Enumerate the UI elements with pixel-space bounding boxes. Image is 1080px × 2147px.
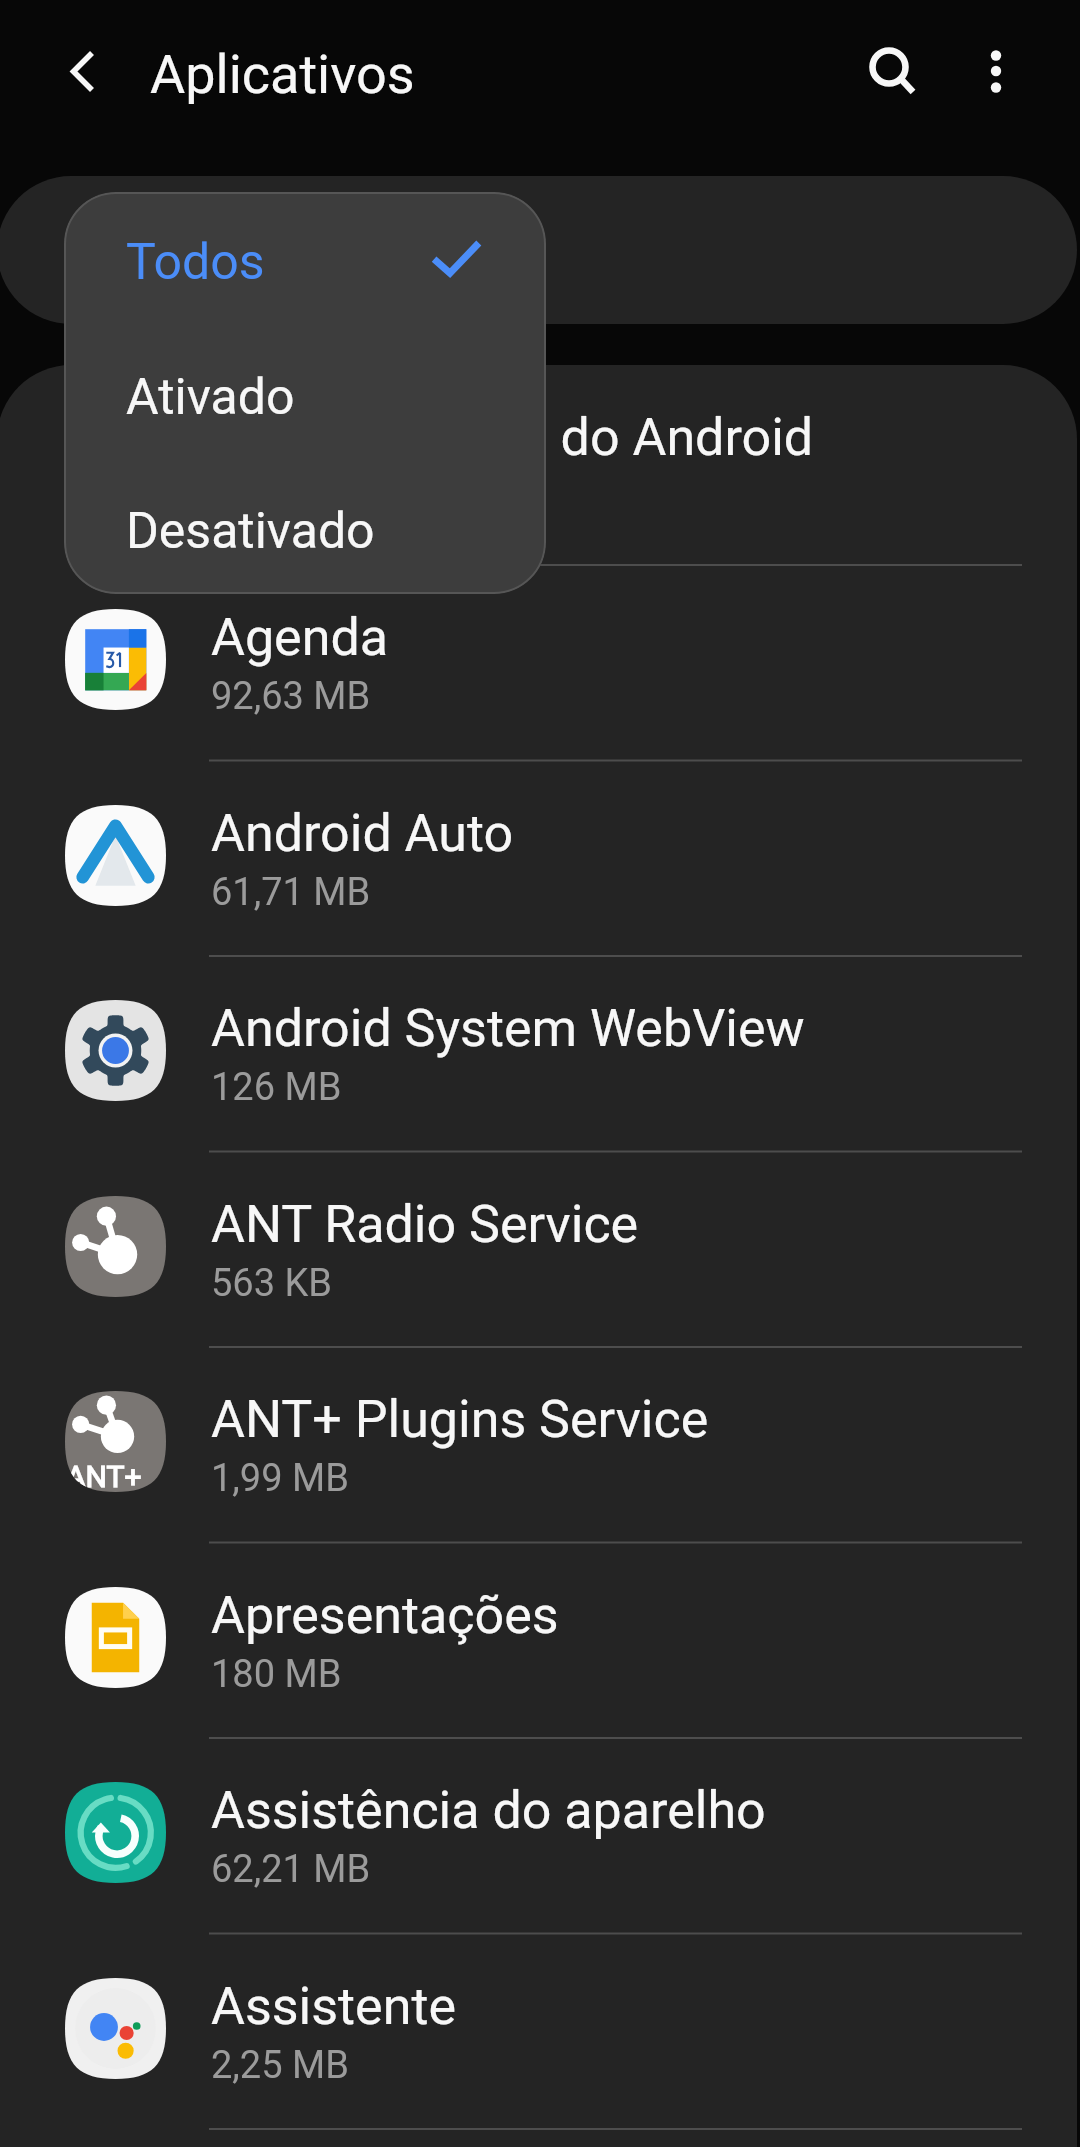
staticText: Apresentações <box>211 1585 559 1646</box>
staticText: 2,25 MB <box>211 2043 349 2088</box>
staticText: Android System WebView <box>211 998 805 1059</box>
button[interactable]: Acessibilidade do Android <box>0 370 1080 565</box>
button[interactable]: Agenda <box>0 565 1080 761</box>
staticText: 180 MB <box>211 1652 342 1697</box>
staticText: Todos <box>126 233 265 292</box>
staticText: Assistente <box>211 1976 456 2037</box>
staticText: Android Auto <box>211 803 514 864</box>
staticText: 563 KB <box>211 1261 333 1306</box>
staticText: 1,99 MB <box>211 1456 349 1501</box>
button[interactable]: Back <box>27 16 139 128</box>
staticText: Agenda <box>211 607 389 668</box>
button[interactable]: Assistente <box>0 1934 1080 2130</box>
staticText: ANT+ Plugins Service <box>211 1389 709 1450</box>
button[interactable]: Assistência do aparelho <box>0 1738 1080 1934</box>
staticText: Desativado <box>126 502 375 561</box>
staticText: 126 MB <box>211 1065 342 1110</box>
button[interactable]: Desativado <box>64 460 546 594</box>
staticText: Acessibilidade do Android <box>211 407 814 468</box>
button[interactable]: Search <box>833 16 945 128</box>
staticText: Ativado <box>126 368 295 427</box>
button[interactable]: Android Auto <box>0 761 1080 957</box>
staticText: 62,21 MB <box>211 1847 371 1892</box>
button[interactable]: Ativado <box>64 326 546 460</box>
button[interactable]: ANT+ <box>0 1347 1080 1543</box>
staticText: ANT Radio Service <box>211 1194 639 1255</box>
button[interactable]: Android System WebView <box>0 956 1080 1152</box>
staticText: Assistência do aparelho <box>211 1780 766 1841</box>
button[interactable]: Apresentações <box>0 1543 1080 1739</box>
staticText: 61,71 MB <box>211 870 371 915</box>
staticText: Aplicativos <box>150 43 415 106</box>
button[interactable]: More options <box>940 16 1052 128</box>
button[interactable]: ANT Radio Service <box>0 1152 1080 1348</box>
staticText: 92,63 MB <box>211 674 371 719</box>
staticText: ANT+ <box>66 1459 142 1492</box>
button[interactable]: Todos <box>64 192 546 326</box>
